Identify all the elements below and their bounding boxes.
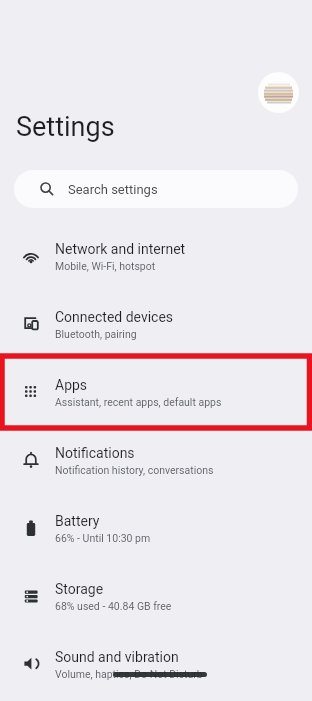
- button[interactable]: Battery: [0, 494, 312, 562]
- button[interactable]: Sound and vibration: [0, 630, 312, 698]
- staticText: Assistant, recent apps, default apps: [55, 396, 222, 408]
- button[interactable]: Connected devices: [0, 290, 312, 358]
- staticText: Settings: [16, 111, 115, 143]
- button[interactable]: Apps: [0, 358, 312, 426]
- button[interactable]: Storage: [0, 562, 312, 630]
- button[interactable]: Search settings: [14, 170, 298, 208]
- staticText: Connected devices: [55, 309, 174, 325]
- staticText: Notification history, conversations: [55, 464, 214, 476]
- staticText: Network and internet: [55, 241, 186, 257]
- staticText: Battery: [55, 513, 100, 529]
- staticText: Storage: [55, 581, 104, 597]
- staticText: Notifications: [55, 445, 135, 461]
- staticText: 66% - Until 10:30 pm: [55, 532, 151, 544]
- staticText: 68% used - 40.84 GB free: [55, 600, 172, 612]
- button[interactable]: Network and internet: [0, 222, 312, 290]
- staticText: Apps: [55, 377, 88, 393]
- staticText: Search settings: [68, 182, 158, 197]
- staticText: Volume, haptics, Do Not Disturb: [55, 668, 203, 680]
- staticText: Mobile, Wi-Fi, hotspot: [55, 260, 156, 272]
- button[interactable]: [258, 72, 299, 113]
- staticText: Bluetooth, pairing: [55, 328, 137, 340]
- button[interactable]: Notifications: [0, 426, 312, 494]
- staticText: Sound and vibration: [55, 649, 179, 665]
